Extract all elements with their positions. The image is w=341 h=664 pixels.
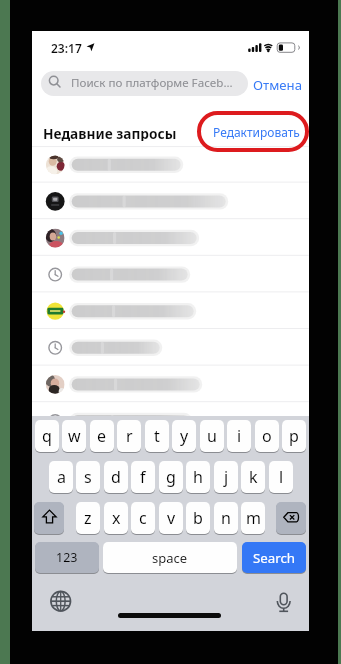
button[interactable]: m (241, 502, 265, 534)
button[interactable] (32, 366, 309, 403)
staticText: Поиск по платформе Faceb... (71, 75, 233, 91)
button[interactable]: c (131, 502, 155, 534)
button[interactable]: o (255, 420, 279, 452)
staticText: c (139, 507, 147, 529)
staticText: a (57, 466, 66, 488)
staticText: space (152, 549, 188, 567)
button[interactable]: a (49, 461, 73, 493)
staticText: Search (253, 549, 296, 567)
staticText: d (111, 466, 121, 488)
staticText: f (140, 466, 146, 488)
staticText: q (42, 425, 52, 447)
button[interactable]: g (159, 461, 183, 493)
button[interactable] (32, 183, 309, 220)
button[interactable] (41, 71, 248, 96)
button[interactable]: q (35, 420, 59, 452)
button[interactable]: h (186, 461, 210, 493)
button[interactable]: b (186, 502, 210, 534)
button[interactable]: n (214, 502, 238, 534)
staticText: y (180, 425, 189, 447)
button[interactable]: j (214, 461, 238, 493)
button[interactable] (32, 293, 309, 330)
staticText: o (262, 425, 272, 447)
button[interactable]: p (282, 420, 306, 452)
staticText: x (112, 507, 121, 529)
button[interactable]: i (227, 420, 251, 452)
button[interactable]: t (145, 420, 169, 452)
staticText: w (68, 425, 81, 447)
button[interactable] (32, 256, 309, 293)
button[interactable]: w (62, 420, 86, 452)
button[interactable]: z (76, 502, 100, 534)
button[interactable]: space (103, 542, 237, 573)
button[interactable]: u (200, 420, 224, 452)
button[interactable]: s (76, 461, 100, 493)
button[interactable] (32, 330, 309, 367)
staticText: m (246, 507, 261, 529)
staticText: s (84, 466, 92, 488)
staticText: l (279, 466, 284, 488)
button[interactable]: 123 (35, 542, 99, 573)
staticText: n (221, 507, 231, 529)
button[interactable]: v (159, 502, 183, 534)
button[interactable] (34, 502, 64, 534)
staticText: Отмена (253, 76, 302, 92)
button[interactable] (274, 585, 294, 611)
button[interactable]: k (241, 461, 265, 493)
staticText: z (84, 507, 92, 529)
staticText: p (289, 425, 299, 447)
staticText: v (167, 507, 176, 529)
button[interactable]: d (104, 461, 128, 493)
button[interactable]: Search (242, 542, 306, 573)
button[interactable]: f (131, 461, 155, 493)
button[interactable] (51, 591, 71, 611)
staticText: r (126, 425, 133, 447)
button[interactable]: Отмена (253, 76, 307, 92)
staticText: u (207, 425, 217, 447)
staticText: h (193, 466, 203, 488)
staticText: k (249, 466, 258, 488)
button[interactable]: e (90, 420, 114, 452)
staticText: 123 (56, 549, 78, 566)
staticText: Недавние запросы (43, 124, 177, 141)
button[interactable]: y (172, 420, 196, 452)
button[interactable] (32, 147, 309, 184)
staticText: b (193, 507, 203, 529)
staticText: g (166, 466, 176, 488)
staticText: 23:17 (51, 40, 82, 55)
staticText: i (237, 425, 242, 447)
staticText: j (224, 466, 229, 488)
button[interactable]: r (117, 420, 141, 452)
button[interactable] (276, 502, 306, 534)
staticText: t (154, 425, 160, 447)
staticText: Редактировать (213, 124, 300, 140)
button[interactable]: Редактировать (197, 111, 309, 152)
staticText: e (97, 425, 107, 447)
button[interactable] (32, 220, 309, 257)
button[interactable]: x (104, 502, 128, 534)
button[interactable]: l (269, 461, 293, 493)
